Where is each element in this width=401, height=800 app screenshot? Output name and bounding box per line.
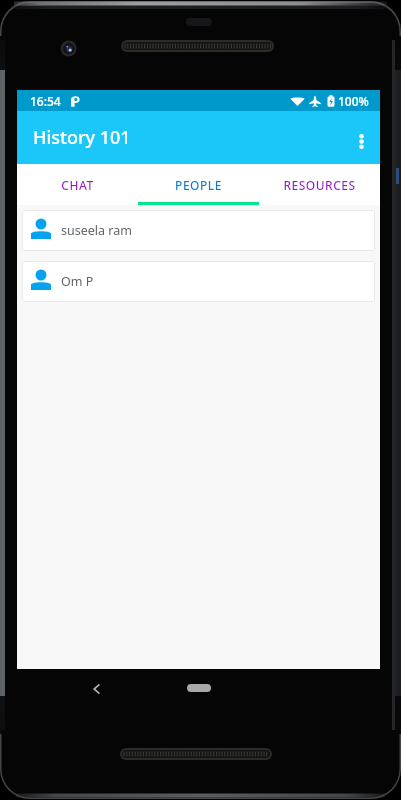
- staticText: CHAT: [61, 177, 94, 193]
- staticText: suseela ram: [61, 222, 132, 239]
- button[interactable]: CHAT: [17, 164, 138, 205]
- staticText: 16:54: [30, 93, 61, 109]
- staticText: Om P: [61, 273, 94, 290]
- button[interactable]: Back: [80, 673, 112, 705]
- staticText: 100%: [338, 93, 369, 109]
- button[interactable]: PEOPLE: [138, 164, 259, 205]
- button[interactable]: Home: [187, 684, 211, 692]
- button[interactable]: suseela ram: [22, 210, 375, 251]
- staticText: RESOURCES: [283, 177, 356, 193]
- button[interactable]: Om P: [22, 261, 375, 302]
- staticText: PEOPLE: [175, 177, 222, 193]
- staticText: History 101: [33, 125, 131, 150]
- button[interactable]: More options: [342, 119, 380, 163]
- button[interactable]: RESOURCES: [259, 164, 380, 205]
